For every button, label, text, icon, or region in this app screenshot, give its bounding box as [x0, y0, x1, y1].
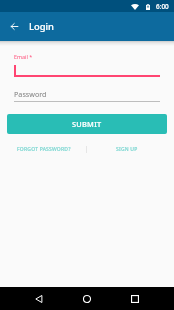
staticText: Login [29, 20, 54, 33]
button[interactable]: SUBMIT [7, 114, 167, 134]
staticText: 6:00 [156, 2, 169, 11]
staticText: Email * [14, 53, 33, 60]
staticText: SUBMIT [72, 119, 102, 129]
button[interactable]: FORGOT PASSWORD? [7, 144, 86, 155]
button[interactable]: Back [0, 12, 28, 41]
button[interactable]: SIGN UP [87, 144, 167, 155]
staticText: Password [14, 89, 47, 99]
staticText: SIGN UP [116, 146, 138, 153]
button[interactable]: Back [15, 287, 63, 310]
button[interactable]: Home [63, 287, 111, 310]
staticText: FORGOT PASSWORD? [17, 146, 71, 153]
button[interactable]: Recent apps [111, 287, 159, 310]
